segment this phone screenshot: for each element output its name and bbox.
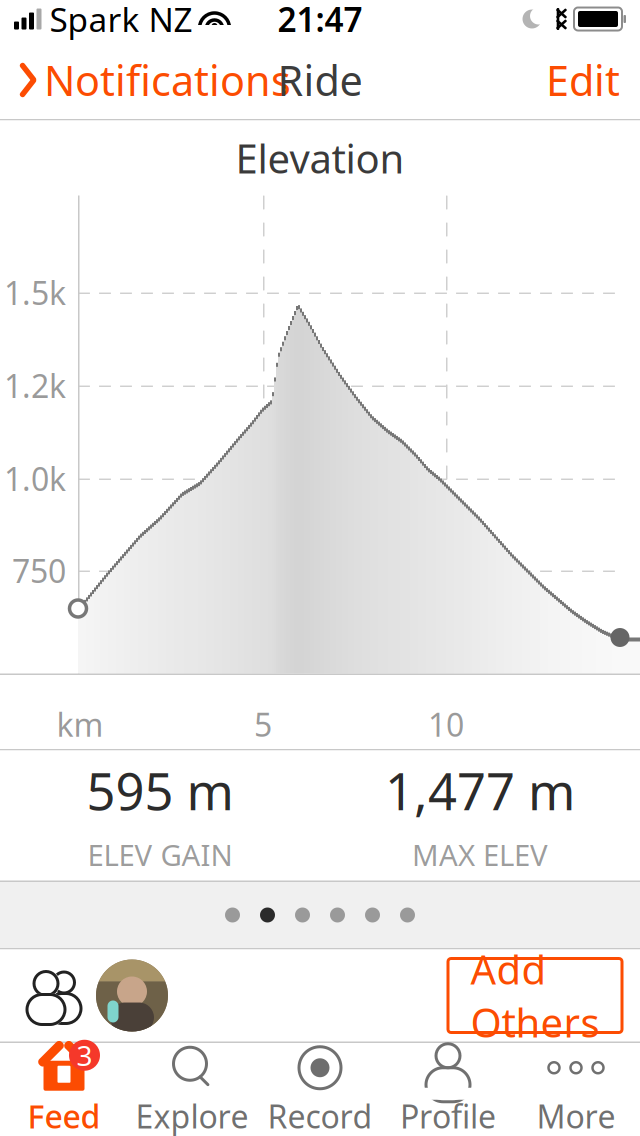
staticText: ELEV GAIN [87, 835, 232, 874]
staticText: 3 [76, 1037, 92, 1074]
staticText: km [56, 703, 103, 745]
staticText: More [536, 1095, 615, 1136]
button[interactable]: Explore [128, 1043, 256, 1136]
staticText: Spark NZ [49, 0, 192, 41]
staticText: MAX ELEV [412, 835, 548, 874]
staticText: 1.0k [4, 457, 66, 500]
staticText: Ride [277, 53, 362, 107]
button[interactable]: Notifications [0, 41, 309, 119]
button[interactable]: Edit [526, 41, 640, 119]
button[interactable]: Participants [0, 949, 168, 1041]
staticText: 1,477 m [385, 757, 575, 824]
staticText: 21:47 [277, 0, 362, 41]
button[interactable]: Add Others [448, 958, 622, 1032]
staticText: Elevation [235, 131, 404, 184]
button[interactable]: More [512, 1043, 640, 1136]
staticText: Add Others [470, 942, 599, 1049]
staticText: Explore [135, 1095, 248, 1136]
staticText: 10 [428, 703, 464, 745]
staticText: 1.5k [4, 271, 66, 314]
staticText: Profile [400, 1095, 496, 1136]
staticText: 750 [12, 549, 66, 592]
staticText: Notifications [44, 53, 291, 107]
staticText: Record [267, 1095, 372, 1136]
staticText: 5 [254, 703, 272, 745]
staticText: 595 m [86, 757, 233, 824]
button[interactable]: Record [256, 1043, 384, 1136]
staticText: 1.2k [4, 364, 66, 407]
button[interactable]: 3 [0, 1043, 128, 1136]
staticText: Edit [546, 53, 620, 107]
staticText: Feed [27, 1095, 100, 1136]
button[interactable]: Profile [384, 1043, 512, 1136]
